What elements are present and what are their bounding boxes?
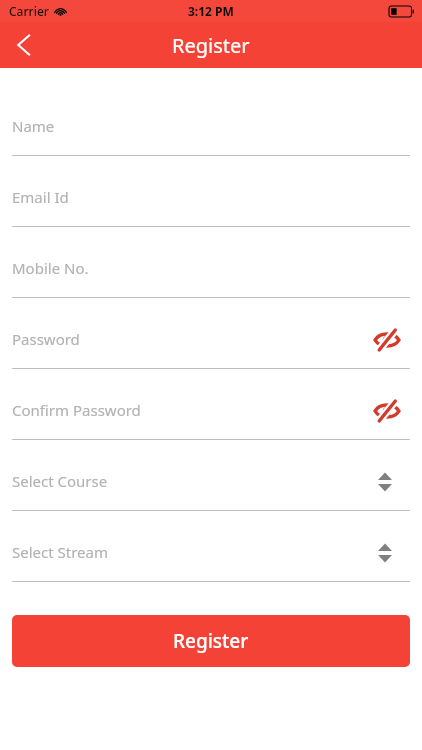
- button[interactable]: Name: [0, 99, 422, 170]
- staticText: Name: [12, 116, 55, 136]
- button[interactable]: Open Select Course picker: [370, 467, 400, 497]
- button[interactable]: Password: [0, 312, 422, 383]
- button[interactable]: Back: [0, 22, 48, 68]
- staticText: Register: [173, 628, 249, 654]
- button[interactable]: Register: [12, 615, 410, 667]
- button[interactable]: Select Stream: [0, 525, 422, 596]
- button[interactable]: Select Course: [0, 454, 422, 525]
- button[interactable]: Open Select Stream picker: [370, 538, 400, 568]
- button[interactable]: Toggle password visibility: [370, 323, 404, 357]
- staticText: Email Id: [12, 187, 69, 207]
- button[interactable]: Toggle password visibility: [370, 394, 404, 428]
- staticText: 3:12 PM: [188, 3, 234, 19]
- button[interactable]: Confirm Password: [0, 383, 422, 454]
- staticText: Carrier: [9, 3, 49, 19]
- staticText: Mobile No.: [12, 258, 89, 278]
- button[interactable]: Email Id: [0, 170, 422, 241]
- staticText: Select Course: [12, 471, 108, 491]
- staticText: Confirm Password: [12, 400, 141, 420]
- button[interactable]: Mobile No.: [0, 241, 422, 312]
- staticText: Password: [12, 329, 80, 349]
- staticText: Select Stream: [12, 542, 108, 562]
- staticText: Register: [172, 32, 250, 59]
